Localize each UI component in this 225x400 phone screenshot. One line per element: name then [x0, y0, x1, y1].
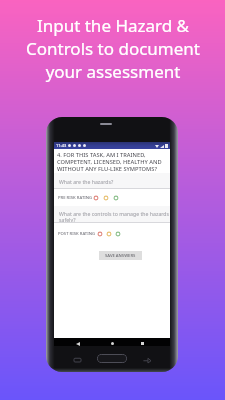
button[interactable]: rating — [113, 195, 119, 201]
button[interactable]: SAVE ANSWERS — [99, 251, 142, 260]
button[interactable]: rating — [97, 231, 103, 237]
staticText: 4. FOR THIS TASK, AM I TRAINED, COMPETEN… — [57, 151, 162, 173]
button[interactable]: rating — [106, 231, 112, 237]
button[interactable]: Back — [143, 358, 151, 363]
staticText: POST RISK RATING — [58, 231, 95, 237]
staticText: SAVE ANSWERS — [105, 253, 136, 259]
button[interactable]: rating — [93, 195, 99, 201]
button[interactable]: Back — [76, 342, 80, 346]
button[interactable]: What are the controls to manage the haza… — [54, 206, 170, 223]
button[interactable]: rating — [115, 231, 121, 237]
staticText: PRE RISK RATING — [58, 195, 93, 201]
staticText: What are the hazards? — [59, 178, 114, 185]
button[interactable]: rating — [103, 195, 109, 201]
button[interactable]: What are the hazards? — [54, 173, 170, 189]
staticText: Input the Hazard & Controls to document … — [26, 14, 200, 83]
button[interactable]: Recents — [74, 357, 81, 362]
button[interactable]: Home — [97, 354, 127, 363]
button[interactable]: Home — [111, 342, 114, 345]
staticText: 11:43 — [56, 143, 67, 148]
staticText: What are the controls to manage the haza… — [59, 210, 170, 223]
